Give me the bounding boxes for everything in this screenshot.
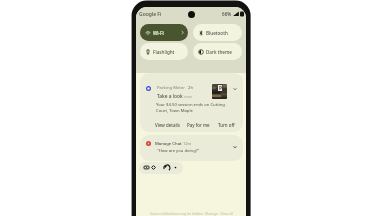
staticText: Bluetooth: [206, 30, 239, 36]
staticText: Some notifications may be hidden · Manag…: [150, 211, 233, 215]
button[interactable]: Snooze: [164, 165, 170, 171]
staticText: Flashlight: [153, 49, 185, 55]
staticText: Parking Meter: [157, 85, 185, 91]
button[interactable]: More options: [173, 165, 178, 170]
button[interactable]: Dark theme: [193, 43, 242, 60]
button[interactable]: Flashlight: [140, 43, 188, 60]
button[interactable]: View details: [155, 122, 180, 128]
staticText: P: [219, 85, 222, 91]
button[interactable]: Screenshot: [144, 165, 149, 170]
staticText: now: [184, 94, 192, 99]
staticText: Google Fi: [139, 11, 162, 18]
staticText: Your $4.50 session ends on Cutting: [156, 102, 225, 108]
staticText: "How are you doing?": [157, 148, 200, 154]
button[interactable]: Manage Chat: [140, 135, 243, 161]
staticText: Manage Chat: [155, 141, 182, 147]
button[interactable]: Parking Meter: [140, 73, 243, 132]
button[interactable]: Bluetooth: [193, 24, 242, 41]
staticText: Dark theme: [206, 49, 239, 55]
staticText: Take a look: [157, 93, 183, 100]
button[interactable]: Pay for me: [187, 122, 210, 128]
staticText: 2h: [188, 85, 193, 91]
staticText: 12m: [183, 141, 192, 146]
button[interactable]: Turn off: [218, 122, 235, 128]
button[interactable]: Notifications: [151, 165, 156, 170]
staticText: Wi-Fi: [153, 30, 180, 36]
staticText: 66%: [222, 11, 232, 17]
staticText: Court, Town Maple: [156, 108, 193, 114]
button[interactable]: Wi-Fi: [140, 24, 188, 41]
